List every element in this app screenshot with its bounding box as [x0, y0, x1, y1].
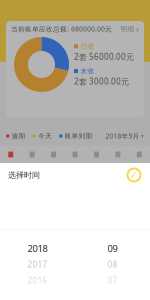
staticText: 当前账单应收总额: 680000.00元 — [11, 25, 112, 33]
button[interactable]: 明细 — [120, 23, 139, 35]
staticText: 2018 — [27, 242, 47, 255]
staticText: 2016 — [27, 275, 47, 286]
button[interactable]: Tool 2 — [21, 146, 43, 163]
staticText: 08 — [107, 259, 117, 270]
staticText: 明细 — [120, 25, 134, 33]
staticText: 今天 — [38, 132, 52, 140]
button[interactable]: Tool 3 — [43, 146, 64, 163]
staticText: › — [136, 23, 139, 35]
staticText: 已收 — [80, 42, 94, 50]
staticText: ✓ — [130, 170, 138, 180]
button[interactable]: 今天 — [32, 132, 52, 140]
staticText: 2套 56000.00元 — [74, 51, 134, 62]
staticText: 2018年9月 — [105, 132, 139, 140]
staticText: ▾ — [141, 133, 144, 139]
button[interactable]: Tool 4 — [64, 146, 86, 163]
staticText: 逾期 — [11, 132, 25, 140]
button[interactable]: Tool 6 — [107, 146, 128, 163]
staticText: 未收 — [80, 67, 94, 75]
button[interactable]: 确定 — [126, 167, 142, 183]
button[interactable]: Tool 7 — [129, 146, 150, 163]
button[interactable]: Tool 1 — [0, 146, 21, 163]
staticText: 07 — [107, 275, 117, 286]
staticText: 09 — [107, 242, 117, 255]
button[interactable]: 账单到期 — [59, 132, 92, 140]
button[interactable]: 逾期 — [6, 132, 25, 140]
staticText: 2017 — [27, 259, 47, 270]
staticText: 账单到期 — [64, 132, 92, 140]
staticText: 选择时间 — [8, 170, 40, 180]
button[interactable]: 2018年9月 — [105, 132, 144, 140]
button[interactable]: Tool 5 — [86, 146, 107, 163]
staticText: 2套 3000.00元 — [74, 76, 129, 87]
